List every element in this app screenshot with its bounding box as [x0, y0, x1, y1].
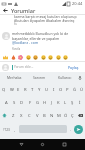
staticText: Sanırım — [33, 75, 46, 80]
button[interactable]: T — [29, 84, 36, 95]
button[interactable]: Emoji — [17, 54, 23, 60]
button[interactable]: Ü — [78, 84, 85, 95]
button[interactable]: Emoji — [10, 54, 16, 60]
staticText: Ş — [71, 100, 74, 106]
button[interactable]: P — [64, 84, 71, 95]
button[interactable]: Z — [9, 110, 17, 121]
button[interactable]: M — [55, 110, 62, 121]
button[interactable]: N — [48, 110, 55, 121]
button[interactable]: Backspace — [76, 110, 85, 121]
button[interactable]: R — [22, 84, 29, 95]
button[interactable]: Kullanıcı — [52, 75, 77, 80]
button[interactable]: Emoji — [25, 54, 31, 60]
staticText: İ — [79, 100, 81, 106]
button[interactable]: D — [18, 97, 26, 108]
button[interactable]: Voice input — [77, 74, 83, 82]
button[interactable]: Emoji — [40, 54, 46, 60]
staticText: S — [13, 100, 16, 106]
staticText: W — [10, 87, 14, 93]
button[interactable]: J — [48, 97, 55, 108]
staticText: V — [36, 113, 39, 119]
button[interactable]: Back — [0, 7, 11, 14]
button[interactable]: W — [8, 84, 15, 95]
button[interactable]: E — [15, 84, 22, 95]
button[interactable]: I — [50, 84, 57, 95]
staticText: I — [53, 87, 55, 93]
button[interactable]: Send — [74, 125, 83, 134]
button[interactable]: Emoji — [2, 54, 8, 60]
button[interactable]: Back — [15, 139, 27, 150]
staticText: C — [28, 113, 31, 119]
button[interactable]: O — [57, 84, 64, 95]
button[interactable]: İ — [76, 97, 83, 108]
staticText: G — [36, 100, 40, 106]
button[interactable]: B — [41, 110, 48, 121]
button[interactable]: S — [10, 97, 18, 108]
button[interactable]: F — [26, 97, 34, 108]
staticText: ?123 — [3, 128, 10, 132]
button[interactable]: Yanıtla — [12, 47, 21, 51]
staticText: M — [57, 113, 61, 119]
button[interactable]: Emoji — [55, 54, 61, 60]
button[interactable]: Q — [0, 84, 8, 95]
button[interactable]: Paylaş — [68, 65, 79, 70]
button[interactable]: A — [2, 97, 10, 108]
staticText: Ğ — [73, 87, 77, 93]
button[interactable]: Ç — [69, 110, 76, 121]
staticText: Q — [2, 87, 6, 93]
button[interactable]: Y — [36, 84, 43, 95]
staticText: X — [20, 113, 23, 119]
staticText: Yorum ekle... — [14, 65, 34, 69]
button[interactable]: Shift — [0, 110, 9, 121]
staticText: B — [43, 113, 46, 119]
staticText: O — [59, 87, 63, 93]
staticText: L — [64, 100, 67, 106]
staticText: D — [20, 100, 24, 106]
staticText: Merhaba — [7, 75, 22, 80]
button[interactable]: L — [62, 97, 69, 108]
staticText: T — [31, 87, 34, 93]
button[interactable]: Home — [36, 139, 48, 150]
button[interactable]: Comma — [11, 124, 18, 135]
staticText: A — [5, 100, 8, 106]
button[interactable]: ?123 — [1, 124, 11, 135]
button[interactable]: Emoji — [47, 54, 53, 60]
staticText: 6s — [14, 22, 17, 26]
button[interactable]: Ş — [69, 97, 76, 108]
button[interactable]: Sanırım — [27, 75, 52, 80]
button[interactable]: Recents — [58, 139, 70, 150]
staticText: . — [70, 127, 72, 132]
button[interactable]: Emoji — [32, 54, 38, 60]
button[interactable]: Ö — [62, 110, 69, 121]
button[interactable]: G — [34, 97, 41, 108]
button[interactable]: Emoji — [62, 54, 68, 60]
staticText: 20:44 — [72, 1, 83, 6]
staticText: #kutuları #yapalım #bakalım #sevinç — [14, 18, 75, 23]
button[interactable]: Merhaba — [2, 75, 27, 80]
staticText: J — [51, 100, 53, 106]
button[interactable]: K — [55, 97, 62, 108]
staticText: Ü — [80, 87, 84, 93]
staticText: @kodlarız - com — [12, 40, 39, 45]
staticText: F — [29, 100, 32, 106]
staticText: R — [24, 87, 27, 93]
staticText: başarılılar, ellerde ve yapalım — [12, 36, 60, 41]
button[interactable]: C — [25, 110, 33, 121]
staticText: Z — [12, 113, 15, 119]
staticText: P — [66, 87, 69, 93]
staticText: , — [14, 127, 16, 132]
button[interactable]: U — [43, 84, 50, 95]
button[interactable]: V — [33, 110, 41, 121]
staticText: Y — [38, 87, 41, 93]
button[interactable]: Ğ — [71, 84, 78, 95]
staticText: N — [50, 113, 54, 119]
button[interactable]: H — [41, 97, 48, 108]
staticText: U — [45, 87, 49, 93]
staticText: Yorumlar — [11, 7, 36, 14]
staticText: karma karşıtı mesaj kutuları oluşturup — [14, 14, 77, 19]
staticText: E — [17, 87, 20, 93]
button[interactable]: Period — [68, 124, 74, 135]
button[interactable]: X — [17, 110, 25, 121]
staticText: K — [57, 100, 60, 106]
